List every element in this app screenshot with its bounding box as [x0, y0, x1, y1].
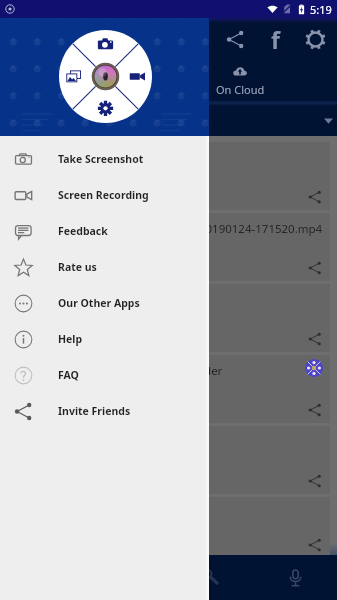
button[interactable]: Share item	[305, 187, 325, 207]
button[interactable]: Feedback	[0, 213, 209, 249]
button[interactable]: Share item	[305, 535, 325, 555]
staticText: Screen Recording	[58, 188, 149, 202]
button[interactable]: Settings	[295, 19, 335, 59]
staticText: Feedback	[58, 224, 108, 238]
staticText: VID-20190124-171520.mp4	[176, 221, 323, 237]
staticText: FAQ	[58, 368, 79, 382]
button[interactable]: Share item	[4, 497, 330, 558]
button[interactable]: Share item	[305, 400, 325, 420]
staticText: On Cloud	[216, 82, 265, 97]
staticText: Take Screenshot	[58, 152, 144, 166]
button[interactable]: Share	[215, 19, 255, 59]
button[interactable]: Our Other Apps	[0, 285, 209, 321]
staticText: Screen Recorder	[134, 363, 223, 379]
button[interactable]: Share item	[4, 284, 330, 352]
button[interactable]: Take Screenshot	[0, 141, 209, 177]
button[interactable]: Invite Friends	[0, 393, 209, 429]
button[interactable]: Share item	[305, 258, 325, 278]
button[interactable]: Screen Recorder	[4, 355, 330, 423]
button[interactable]: Tools	[169, 555, 253, 600]
button[interactable]: Expand	[318, 110, 337, 130]
button[interactable]: Share item	[4, 426, 330, 494]
button[interactable]: Share item	[305, 329, 325, 349]
staticText: 5:19	[310, 2, 332, 17]
staticText: Invite Friends	[58, 404, 131, 418]
staticText: f	[271, 24, 280, 55]
staticText: Our Other Apps	[58, 296, 140, 310]
button[interactable]: Facebook	[255, 19, 295, 59]
button[interactable]: Voice recorder	[253, 555, 337, 600]
button[interactable]: Help	[0, 321, 209, 357]
staticText: Rate us	[58, 260, 97, 274]
button[interactable]: FAQ	[0, 357, 209, 393]
button[interactable]: Share item	[4, 142, 330, 210]
button[interactable]: VID-20190124-171520.mp4	[4, 213, 330, 281]
button[interactable]: Screen Recording	[0, 177, 209, 213]
button[interactable]: Share item	[305, 471, 325, 491]
staticText: Help	[58, 332, 83, 346]
button[interactable]: Rate us	[0, 249, 209, 285]
